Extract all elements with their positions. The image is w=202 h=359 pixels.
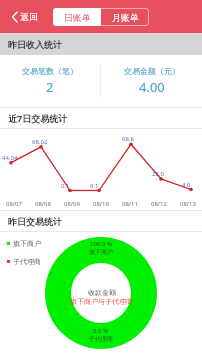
staticText: 收款金额 <box>88 288 116 297</box>
staticText: 0.1 <box>61 182 70 190</box>
staticText: 月账单 <box>112 12 139 23</box>
staticText: 08/08 <box>35 200 51 208</box>
staticText: 08/12 <box>151 200 167 208</box>
staticText: 交易笔数（笔） <box>22 66 78 76</box>
staticText: 4.0 <box>182 181 191 189</box>
staticText: 68.8 <box>122 135 134 143</box>
staticText: 近7日交易统计 <box>8 112 68 124</box>
staticText: 子代理商 <box>13 257 41 266</box>
staticText: 44.04 <box>2 154 18 162</box>
staticText: 08/09 <box>64 200 80 208</box>
staticText: 返回 <box>20 11 38 22</box>
staticText: 昨日交易统计 <box>8 216 62 227</box>
staticText: 68.02 <box>32 138 48 146</box>
staticText: 旗下商户 <box>89 248 113 256</box>
staticText: 子代理商 <box>89 335 113 343</box>
staticText: 100.0 % <box>90 240 112 248</box>
staticText: 4.00 <box>139 78 165 96</box>
button[interactable]: 月账单 <box>101 8 149 26</box>
staticText: 昨日收入统计 <box>8 39 62 50</box>
button[interactable]: 交易笔数（笔） <box>0 66 100 96</box>
button[interactable]: 返回 <box>0 7 46 26</box>
staticText: 22.0 <box>152 170 164 178</box>
staticText: 旗下商户 <box>13 239 41 248</box>
staticText: 0.0 % <box>93 327 109 335</box>
button[interactable]: 日账单 <box>53 8 101 26</box>
staticText: 日账单 <box>64 12 91 23</box>
button[interactable]: 交易金额（元） <box>101 66 202 96</box>
staticText: 旗下商户与子代理商 <box>70 297 133 306</box>
staticText: 08/10 <box>93 200 109 208</box>
staticText: 08/13 <box>180 200 196 208</box>
staticText: 交易金额（元） <box>124 66 180 76</box>
staticText: 08/11 <box>122 200 138 208</box>
staticText: 2 <box>46 78 54 96</box>
staticText: 08/07 <box>6 200 22 208</box>
staticText: 0.1 <box>90 182 99 190</box>
